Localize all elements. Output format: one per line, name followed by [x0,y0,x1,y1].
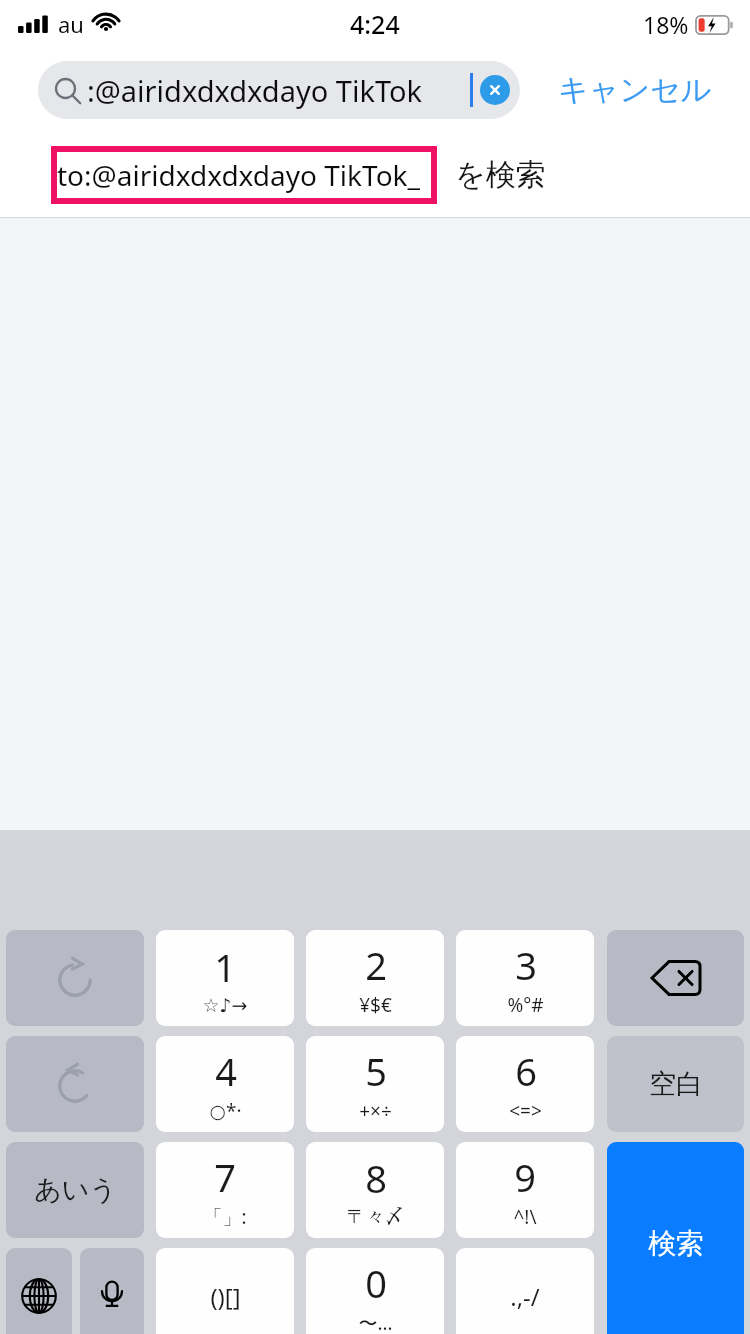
button[interactable] [6,1036,144,1132]
staticText: 0 [365,1257,387,1309]
button[interactable]: 9 [456,1142,594,1238]
staticText: 1 [214,941,236,993]
staticText: 6 [515,1045,537,1097]
button[interactable]: ()[] [156,1248,294,1334]
staticText: 4:24 [350,7,400,41]
staticText: 9 [514,1151,536,1203]
staticText: au [58,9,84,39]
staticText: .,-/ [510,1280,540,1313]
button[interactable]: Delete [607,930,744,1026]
staticText: 8 [365,1152,387,1204]
button[interactable]: Clear text [480,75,510,105]
staticText: ¥$€ [359,992,392,1018]
staticText: 18% [643,9,689,40]
button[interactable]: 7 [156,1142,294,1238]
button[interactable]: 6 [456,1036,594,1132]
button[interactable] [6,930,144,1026]
staticText: <=> [509,1098,542,1124]
staticText: 5 [365,1045,387,1097]
button[interactable]: .,-/ [456,1248,594,1334]
staticText: 4 [215,1045,237,1097]
button[interactable]: 1 [156,930,294,1026]
staticText: %°# [507,992,544,1018]
staticText: :@airidxdxdxdayo TikTok [87,71,470,110]
staticText: を検索 [455,156,546,194]
staticText: 〒々〆 [347,1205,404,1229]
button[interactable]: 2 [306,930,444,1026]
button[interactable]: 検索 [607,1142,744,1334]
staticText: 2 [365,939,387,991]
button[interactable]: 0 [306,1248,444,1334]
staticText: 〜… [358,1310,393,1334]
staticText: ^!\ [513,1204,537,1230]
staticText: ☆♪→ [202,994,248,1016]
button[interactable]: Switch keyboard [6,1248,72,1334]
button[interactable]: 空白 [607,1036,744,1132]
button[interactable]: Kana keyboard [6,1142,144,1238]
button[interactable]: キャンセル [558,61,712,119]
staticText: ()[] [210,1280,241,1313]
button[interactable]: :@airidxdxdxdayo TikTok [38,61,520,119]
staticText: 空白 [649,1067,703,1101]
staticText: あいう [34,1173,117,1207]
button[interactable]: 5 [306,1036,444,1132]
button[interactable]: 3 [456,930,594,1026]
staticText: 7 [214,1151,236,1203]
button[interactable]: 8 [306,1142,444,1238]
button[interactable]: to:@airidxdxdxdayo TikTok_ [0,132,750,218]
staticText: キャンセル [558,71,712,109]
staticText: 3 [515,939,537,991]
staticText: 検索 [648,1226,704,1261]
button[interactable]: 4 [156,1036,294,1132]
staticText: 「」: [203,1204,247,1230]
staticText: +×÷ [359,1098,392,1124]
button[interactable]: Dictation [80,1248,144,1334]
staticText: ○*· [209,1098,242,1124]
staticText: to:@airidxdxdxdayo TikTok_ [57,156,420,194]
